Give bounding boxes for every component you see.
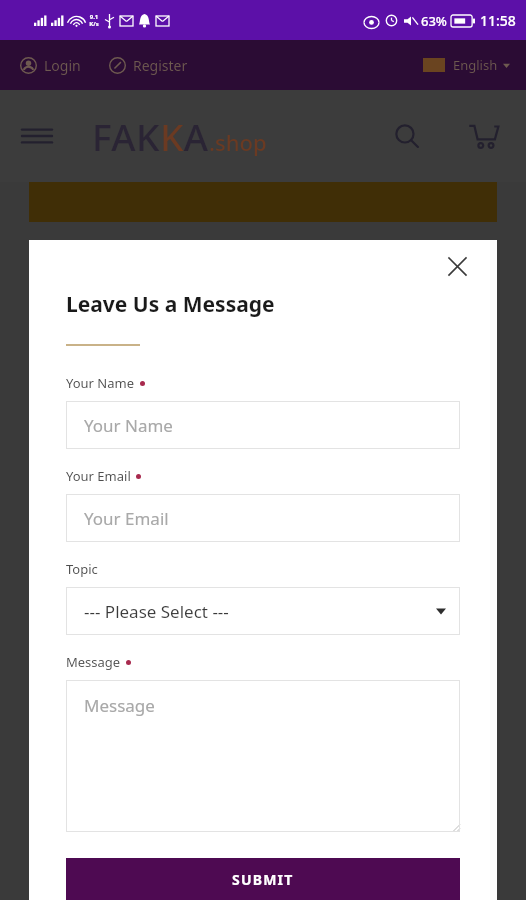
staticText: Login [44,56,81,75]
button[interactable]: Your Email [66,494,460,542]
button[interactable]: Your Name [66,401,460,449]
button[interactable]: Cart [460,114,508,158]
staticText: Your Name [84,414,173,437]
staticText: Topic [66,560,98,578]
button[interactable]: --- Please Select --- [66,587,460,635]
staticText: 63% [421,12,447,30]
staticText: FAKKA [92,111,209,161]
staticText: --- Please Select --- [84,600,229,623]
button[interactable]: Login [16,50,85,81]
button[interactable]: Menu [14,118,60,154]
button[interactable]: English [419,50,514,80]
button[interactable]: Search [386,115,428,157]
staticText: Your Email [84,507,169,530]
staticText: Your Name [66,374,135,392]
button[interactable]: Close [441,250,474,283]
staticText: 11:58 [480,11,516,30]
button[interactable]: Message [66,680,460,832]
staticText: Message [66,653,121,671]
staticText: .shop [209,127,267,157]
button[interactable]: SUBMIT [66,858,460,900]
staticText: Leave Us a Message [66,290,275,319]
button[interactable]: Register [105,50,192,81]
staticText: 9.1 K/s [89,13,99,28]
staticText: Register [133,56,188,75]
staticText: Message [84,694,155,717]
staticText: English [453,56,498,74]
staticText: SUBMIT [232,870,294,889]
staticText: Your Email [66,467,131,485]
